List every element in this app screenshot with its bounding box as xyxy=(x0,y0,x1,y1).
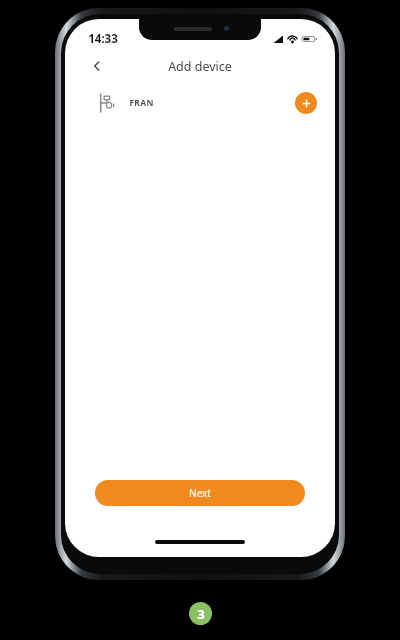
button[interactable]: Back xyxy=(83,52,111,80)
button[interactable]: Add xyxy=(295,92,317,114)
staticText: Add device xyxy=(168,58,232,75)
staticText: 3 xyxy=(197,605,205,623)
button[interactable]: FRAN xyxy=(65,81,335,125)
button[interactable]: Next xyxy=(95,480,305,506)
staticText: FRAN xyxy=(129,97,154,109)
staticText: 14:33 xyxy=(88,31,118,47)
staticText: Next xyxy=(189,486,211,500)
